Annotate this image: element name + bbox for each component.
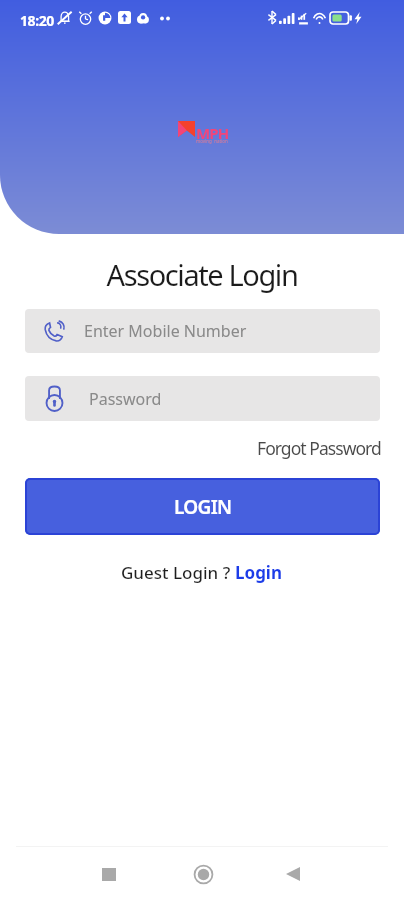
button[interactable]: Login [235, 561, 283, 584]
button[interactable]: Home [179, 850, 227, 898]
staticText: MPH [196, 123, 229, 143]
button[interactable]: Back [269, 850, 317, 898]
staticText: Enter Mobile Number [84, 320, 247, 342]
staticText: Associate Login [0, 255, 404, 294]
staticText: moving nation [196, 138, 228, 144]
staticText: Password [89, 388, 162, 410]
staticText: LOGIN [174, 494, 232, 520]
button[interactable]: Enter Mobile Number [25, 309, 380, 353]
button[interactable]: Recent apps [85, 850, 133, 898]
staticText: 18:20 [20, 11, 54, 30]
button[interactable]: Password [25, 376, 380, 421]
staticText: Guest Login ? [121, 561, 235, 584]
button[interactable]: LOGIN [25, 478, 380, 535]
button[interactable]: Forgot Password [257, 436, 404, 460]
